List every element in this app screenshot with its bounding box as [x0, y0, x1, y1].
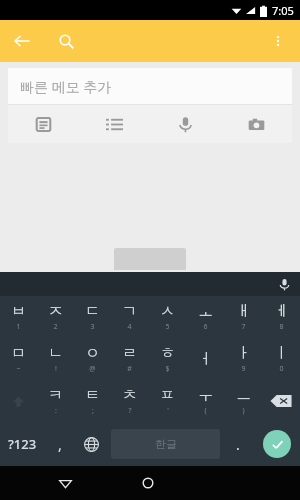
button[interactable]: ,: [45, 422, 75, 466]
staticText: ㅍ: [160, 386, 175, 405]
staticText: 5: [165, 322, 170, 332]
staticText: :: [55, 406, 57, 416]
staticText: ㅏ: [236, 344, 251, 363]
staticText: ㅓ: [198, 350, 213, 369]
staticText: ㅣ: [274, 344, 289, 363]
button[interactable]: Done: [263, 430, 291, 458]
staticText: (: [204, 406, 207, 416]
staticText: ;: [92, 406, 94, 416]
staticText: ㄹ: [122, 344, 137, 363]
staticText: ㄴ: [48, 344, 63, 363]
staticText: .: [236, 435, 240, 454]
button[interactable]: ㅔ: [262, 296, 300, 338]
staticText: ㅁ: [11, 344, 26, 363]
staticText: ㅜ: [198, 386, 213, 405]
button[interactable]: Home: [131, 466, 165, 500]
staticText: 6: [203, 322, 208, 332]
button[interactable]: ㅊ: [111, 380, 148, 422]
button[interactable]: .: [223, 422, 253, 466]
staticText: ㅋ: [48, 386, 63, 405]
button[interactable]: ?123: [0, 422, 45, 466]
button[interactable]: Photo: [221, 105, 292, 143]
button[interactable]: ㅇ: [74, 338, 111, 380]
staticText: ㅔ: [274, 302, 289, 321]
staticText: ~: [16, 364, 21, 374]
staticText: ㅌ: [85, 386, 100, 405]
button[interactable]: ㄹ: [111, 338, 148, 380]
button[interactable]: Voice input: [268, 272, 300, 296]
staticText: 1: [16, 322, 21, 332]
staticText: #: [127, 364, 132, 374]
staticText: ): [242, 406, 245, 416]
button[interactable]: ㅐ: [224, 296, 262, 338]
staticText: ㄷ: [85, 302, 100, 321]
button[interactable]: 한글: [111, 429, 220, 459]
button[interactable]: Backspace: [262, 380, 300, 422]
staticText: ㅗ: [198, 302, 213, 321]
staticText: 7: [241, 322, 246, 332]
staticText: 0: [279, 364, 284, 374]
staticText: !: [55, 364, 57, 374]
button[interactable]: ㅍ: [148, 380, 186, 422]
staticText: 9: [241, 364, 246, 374]
staticText: ?: [128, 406, 132, 416]
staticText: 3: [90, 322, 95, 332]
button[interactable]: Checklist: [79, 105, 150, 143]
staticText: ㅅ: [160, 302, 175, 321]
staticText: 8: [279, 322, 284, 332]
staticText: 빠른 메모 추가: [20, 77, 112, 96]
button[interactable]: 빠른 메모 추가: [8, 68, 292, 143]
staticText: 7:05: [272, 3, 294, 18]
button[interactable]: ㅌ: [74, 380, 111, 422]
button[interactable]: Drawing: [8, 105, 79, 143]
staticText: ㅊ: [122, 386, 137, 405]
staticText: @: [89, 364, 96, 374]
button[interactable]: ㅏ: [224, 338, 262, 380]
button[interactable]: Voice note: [150, 105, 221, 143]
staticText: ㄱ: [122, 302, 137, 321]
staticText: ': [167, 406, 169, 416]
button[interactable]: Change language: [75, 422, 108, 466]
staticText: $: [165, 364, 170, 374]
button[interactable]: ㅅ: [148, 296, 186, 338]
button[interactable]: ㅋ: [37, 380, 74, 422]
button[interactable]: ㄷ: [74, 296, 111, 338]
staticText: ,: [58, 435, 62, 454]
button[interactable]: ㅓ: [186, 338, 224, 380]
button[interactable]: ㅣ: [262, 338, 300, 380]
staticText: ㅇ: [85, 344, 100, 363]
button[interactable]: ㅜ: [186, 380, 224, 422]
button[interactable]: ㅈ: [37, 296, 74, 338]
staticText: 4: [127, 322, 132, 332]
button[interactable]: ㄴ: [37, 338, 74, 380]
staticText: ㅂ: [11, 302, 26, 321]
staticText: ㅡ: [236, 386, 251, 405]
staticText: 한글: [155, 437, 177, 451]
button[interactable]: Back: [48, 466, 82, 500]
staticText: ㅎ: [160, 344, 175, 363]
staticText: 2: [53, 322, 58, 332]
button[interactable]: ㅁ: [0, 338, 37, 380]
button[interactable]: ㅂ: [0, 296, 37, 338]
button[interactable]: More options: [256, 20, 300, 62]
button[interactable]: ㅎ: [148, 338, 186, 380]
staticText: ?123: [8, 435, 37, 453]
button[interactable]: ㅡ: [224, 380, 262, 422]
button[interactable]: ㅗ: [186, 296, 224, 338]
button[interactable]: Search: [44, 20, 88, 62]
button[interactable]: ㄱ: [111, 296, 148, 338]
staticText: ㅈ: [48, 302, 63, 321]
button[interactable]: Back: [0, 20, 44, 62]
staticText: ㅐ: [236, 302, 251, 321]
